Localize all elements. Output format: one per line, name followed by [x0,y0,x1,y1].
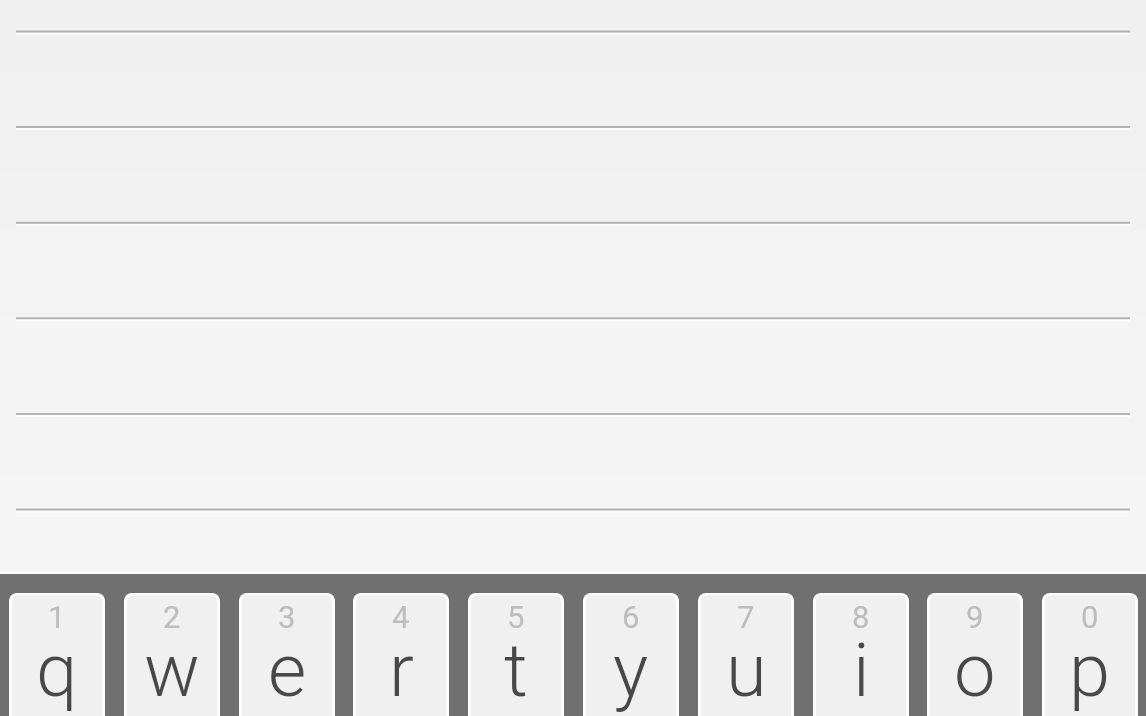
staticText: e [268,627,307,714]
staticText: y [613,627,649,714]
staticText: 8 [852,599,870,635]
button[interactable]: r [356,595,446,716]
staticText: q [36,627,78,714]
button[interactable]: p [1045,595,1135,716]
staticText: 7 [737,599,755,635]
button[interactable]: e [242,595,332,716]
staticText: 4 [392,599,410,635]
staticText: w [144,627,200,714]
staticText: u [726,627,767,714]
button[interactable]: t [471,595,561,716]
button[interactable]: q [12,595,102,716]
staticText: 5 [507,599,525,635]
staticText: p [1069,627,1111,714]
staticText: 3 [278,599,296,635]
staticText: 6 [622,599,640,635]
button[interactable]: Note text area [0,0,1146,574]
staticText: 0 [1081,599,1099,635]
button[interactable]: y [586,595,676,716]
staticText: 9 [966,599,984,635]
staticText: t [504,627,528,714]
button[interactable]: w [127,595,217,716]
staticText: 1 [48,599,66,635]
staticText: i [853,627,870,714]
staticText: r [389,627,414,714]
button[interactable]: o [930,595,1020,716]
button[interactable]: u [701,595,791,716]
staticText: o [954,627,996,714]
staticText: 2 [163,599,181,635]
button[interactable]: i [816,595,906,716]
